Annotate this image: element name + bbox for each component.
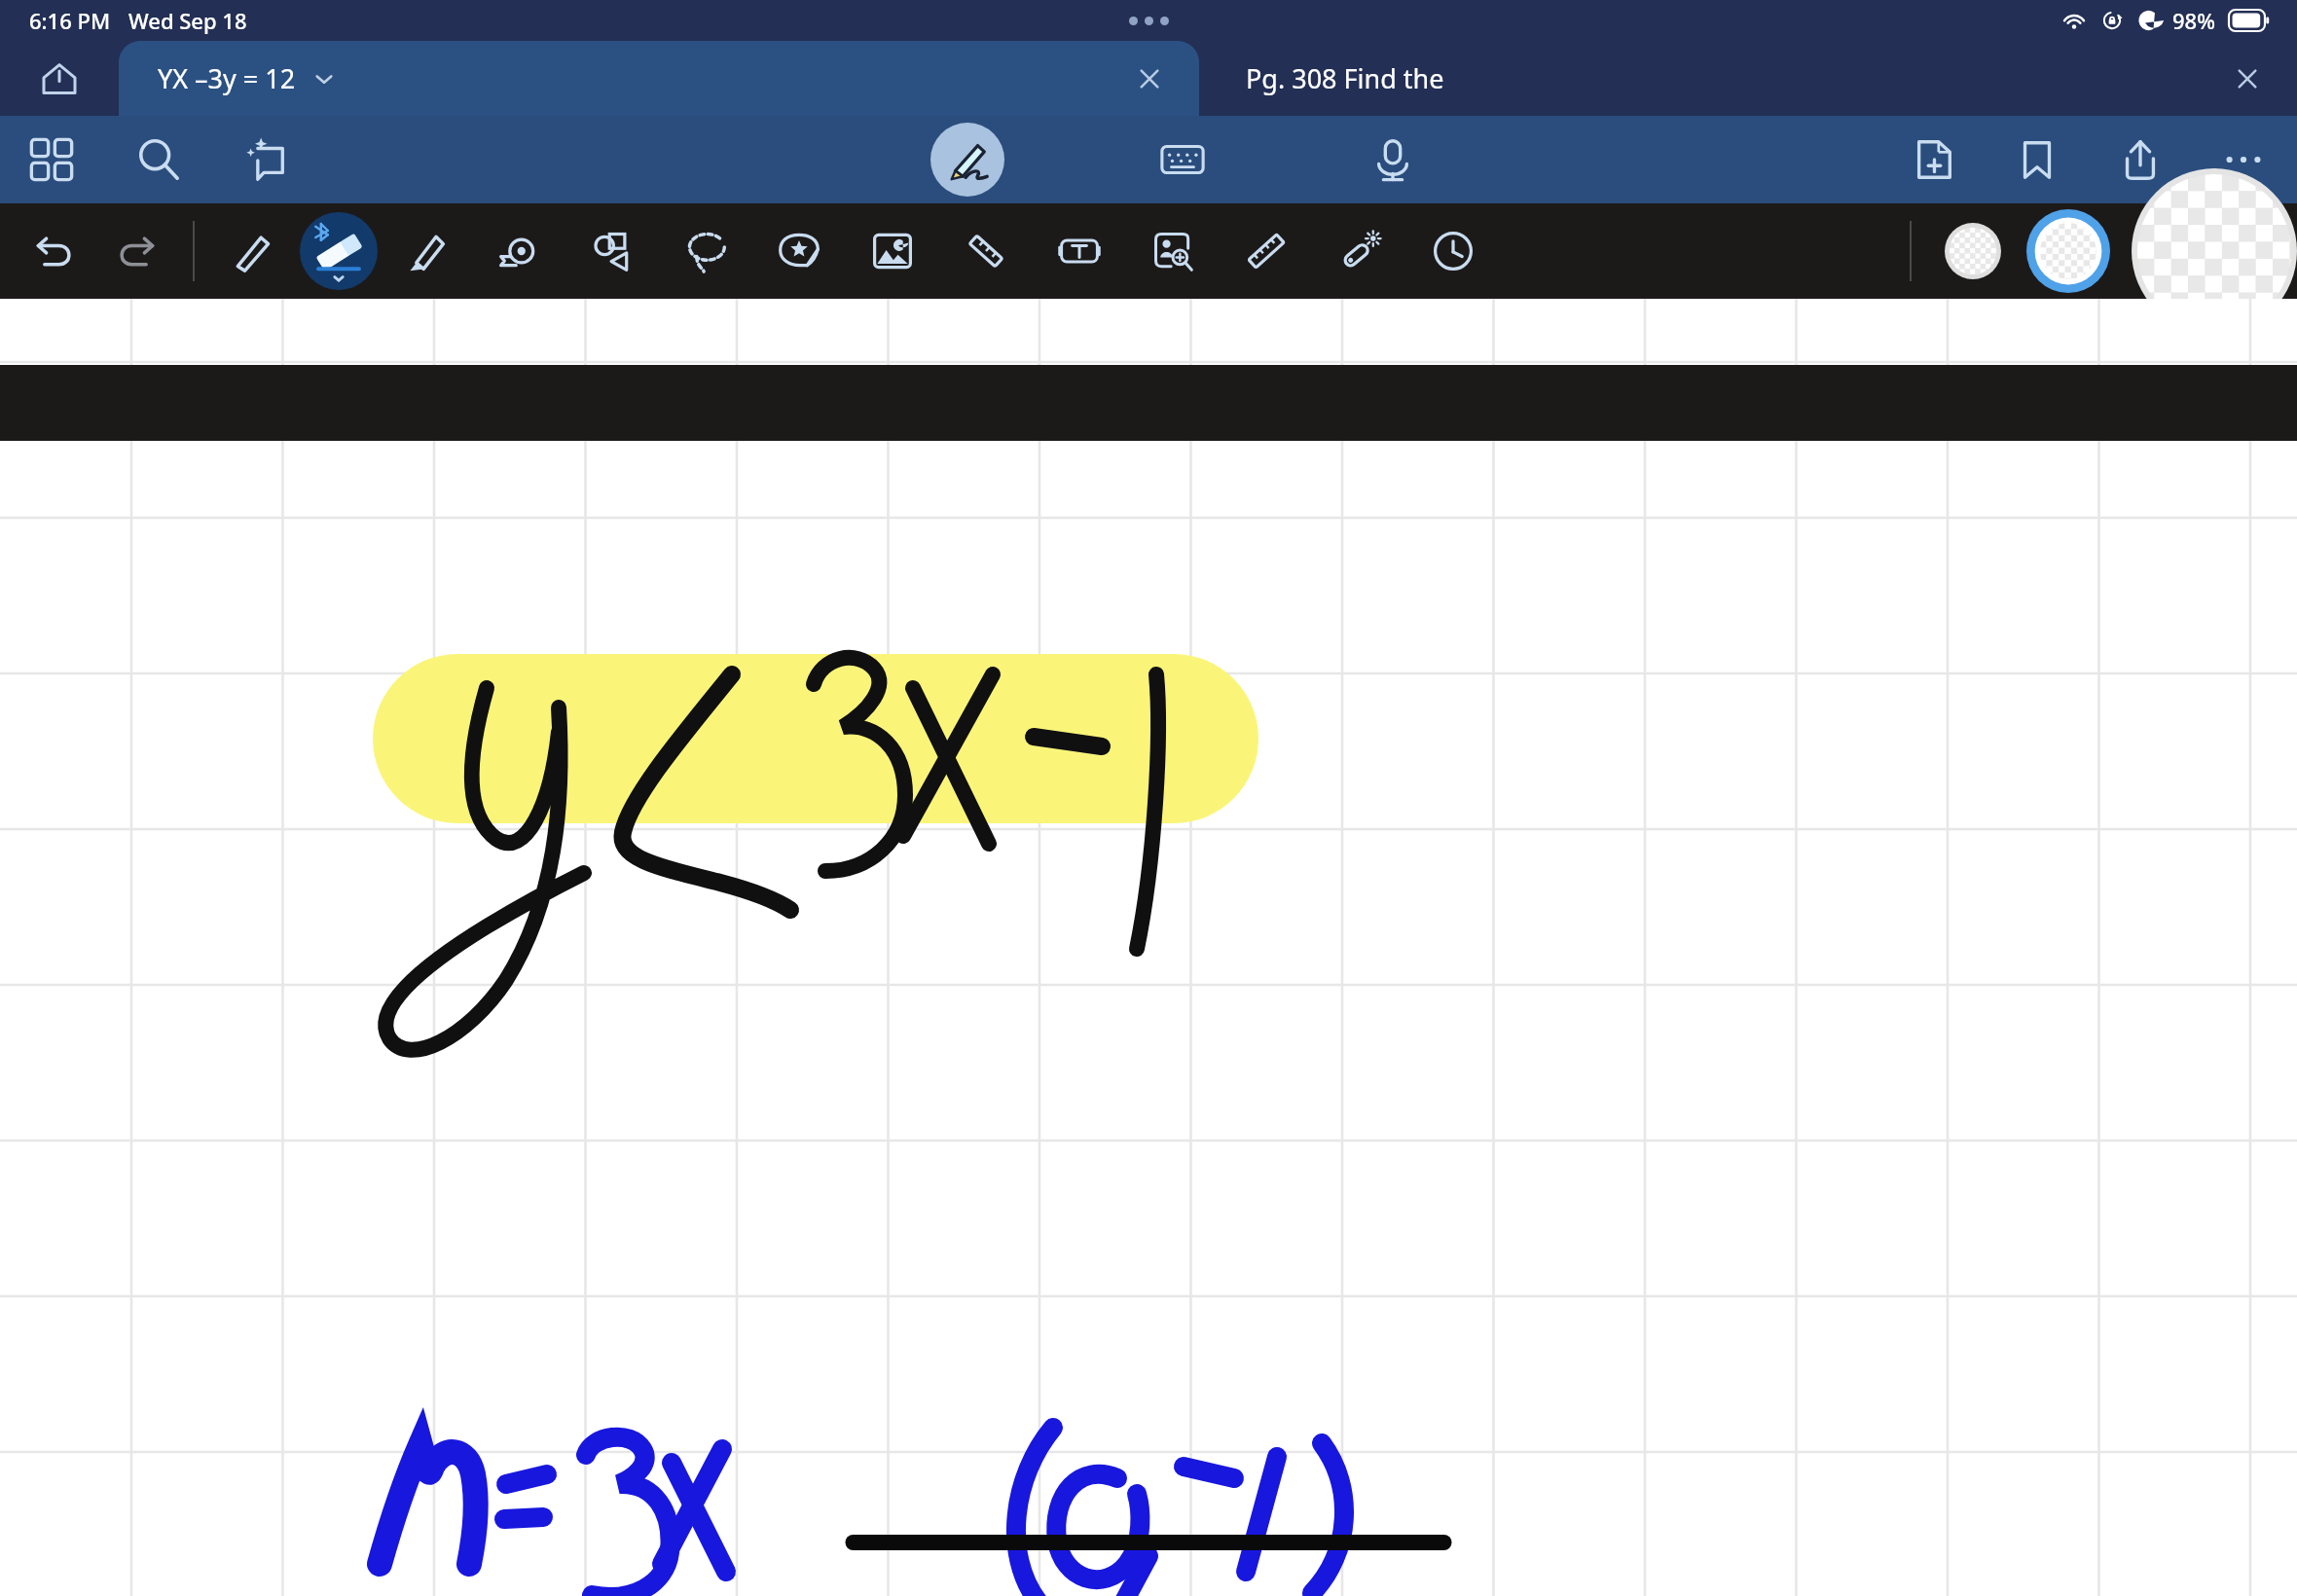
button[interactable]: Shapes [580,219,644,283]
button[interactable]: Colour swatch 2, selected [2026,209,2110,293]
button[interactable]: More options [2211,127,2276,192]
staticText: YX –3y = 12 [158,60,296,96]
button[interactable]: Close tab [2223,54,2272,103]
button[interactable]: Magic tool [1328,219,1392,283]
staticText: Pg. 308 Find the [1246,60,1444,96]
button[interactable]: Eraser [300,212,378,290]
button[interactable]: Keyboard [1150,127,1215,192]
button[interactable]: Undo [21,219,86,283]
button[interactable]: Close tab [1125,54,1174,103]
button[interactable]: YX –3y = 12 [119,41,1199,116]
button[interactable]: Smart assist [234,127,298,192]
staticText: 6:16 PM [29,6,111,35]
button[interactable]: Ink mode [930,123,1004,197]
button[interactable]: Voice input [1361,127,1425,192]
button[interactable]: Bookmark [2005,127,2069,192]
button[interactable]: Stickers [767,219,831,283]
staticText: Wed Sep 18 [128,6,247,35]
button[interactable]: Lasso select [674,219,738,283]
button[interactable]: Ruler [1234,219,1298,283]
button[interactable]: Lasso tape [487,219,551,283]
button[interactable]: Redo [105,219,169,283]
button[interactable]: History [1421,219,1485,283]
button[interactable]: Search [127,127,191,192]
button[interactable]: Image search [1141,219,1205,283]
button[interactable]: Pen [220,219,284,283]
button[interactable]: Colour swatch 1 [1945,223,2001,279]
staticText: 98% [2172,6,2215,35]
button[interactable]: Insert image [860,219,925,283]
button[interactable]: Share [2108,127,2172,192]
button[interactable]: Highlighter [393,219,457,283]
button[interactable]: Pg. 308 Find the [1199,41,2297,116]
button[interactable]: Add page [1902,127,1966,192]
button[interactable]: Text box [1047,219,1112,283]
button[interactable]: Home [0,41,119,116]
button[interactable]: Ruler line [954,219,1018,283]
button[interactable]: Grid view [19,127,84,192]
button[interactable]: Active colour [2132,203,2297,299]
